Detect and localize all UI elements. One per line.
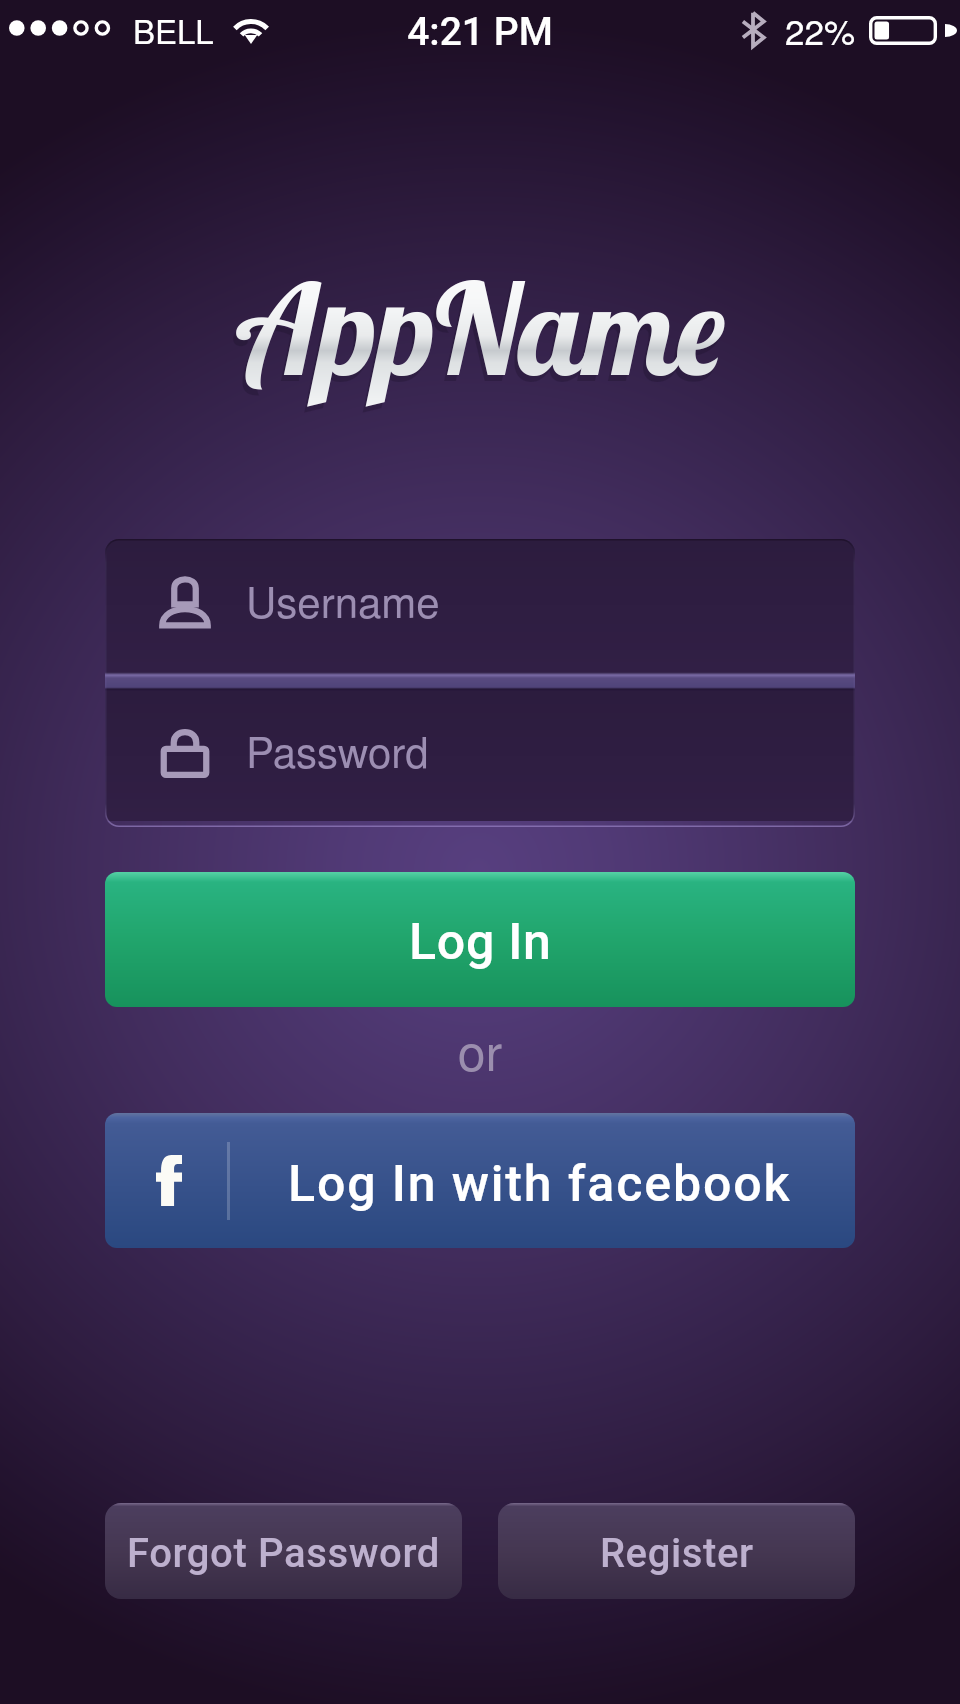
button[interactable]: Log In	[105, 872, 855, 1007]
button[interactable]: Log In with facebook	[105, 1113, 855, 1248]
button[interactable]: Register	[498, 1503, 855, 1599]
staticText: Username	[246, 570, 440, 630]
staticText: BELL	[133, 6, 214, 53]
staticText: Log In	[409, 913, 552, 972]
staticText: Forgot Password	[127, 1530, 440, 1577]
button[interactable]: Username	[105, 539, 855, 672]
staticText: or	[0, 1014, 960, 1086]
staticText: 22%	[785, 5, 856, 55]
staticText: AppName	[235, 250, 725, 406]
staticText: Log In with facebook	[288, 1155, 792, 1214]
button[interactable]: Forgot Password	[105, 1503, 462, 1599]
staticText: Register	[600, 1530, 754, 1577]
staticText: AppName	[232, 256, 722, 412]
staticText: 4:21 PM	[0, 9, 960, 55]
button[interactable]: Password	[105, 691, 855, 821]
staticText: Password	[246, 720, 429, 780]
